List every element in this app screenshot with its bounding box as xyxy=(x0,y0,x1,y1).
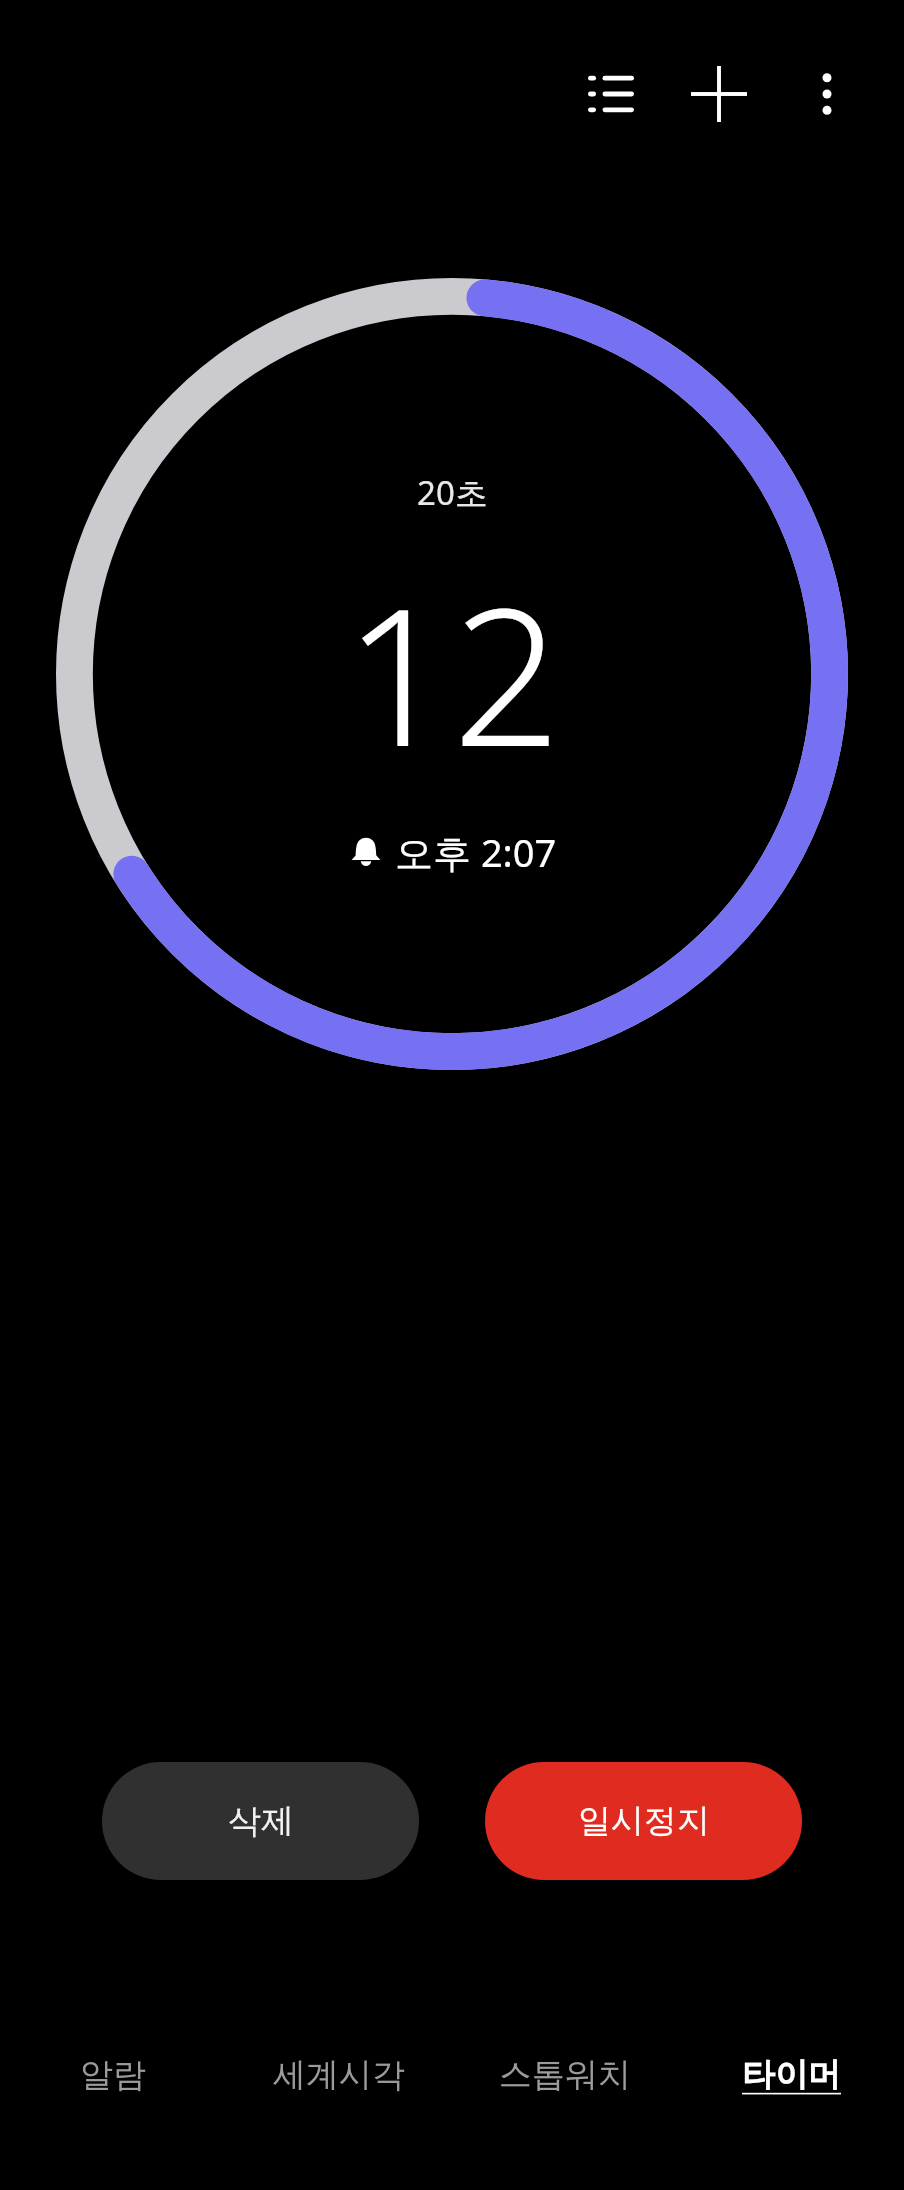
button[interactable]: Timer list xyxy=(568,51,654,137)
button[interactable]: 스톱워치 xyxy=(452,2038,678,2134)
button[interactable]: 삭제 xyxy=(102,1762,419,1880)
button[interactable]: Add timer xyxy=(676,51,762,137)
staticText: 알람 xyxy=(80,2054,146,2096)
button[interactable]: 알람 xyxy=(0,2038,226,2134)
button[interactable]: More options xyxy=(784,51,870,137)
button[interactable]: 일시정지 xyxy=(485,1762,802,1880)
staticText: 일시정지 xyxy=(578,1800,710,1842)
staticText: 삭제 xyxy=(228,1800,294,1842)
staticText: 12 xyxy=(344,543,561,802)
button[interactable]: 타이머 xyxy=(678,2038,904,2134)
staticText: 세계시각 xyxy=(273,2054,405,2096)
staticText: 20초 xyxy=(417,470,488,515)
staticText: 오후 2:07 xyxy=(395,826,557,878)
staticText: 스톱워치 xyxy=(499,2054,631,2096)
button[interactable]: 세계시각 xyxy=(226,2038,452,2134)
staticText: 타이머 xyxy=(742,2054,841,2096)
